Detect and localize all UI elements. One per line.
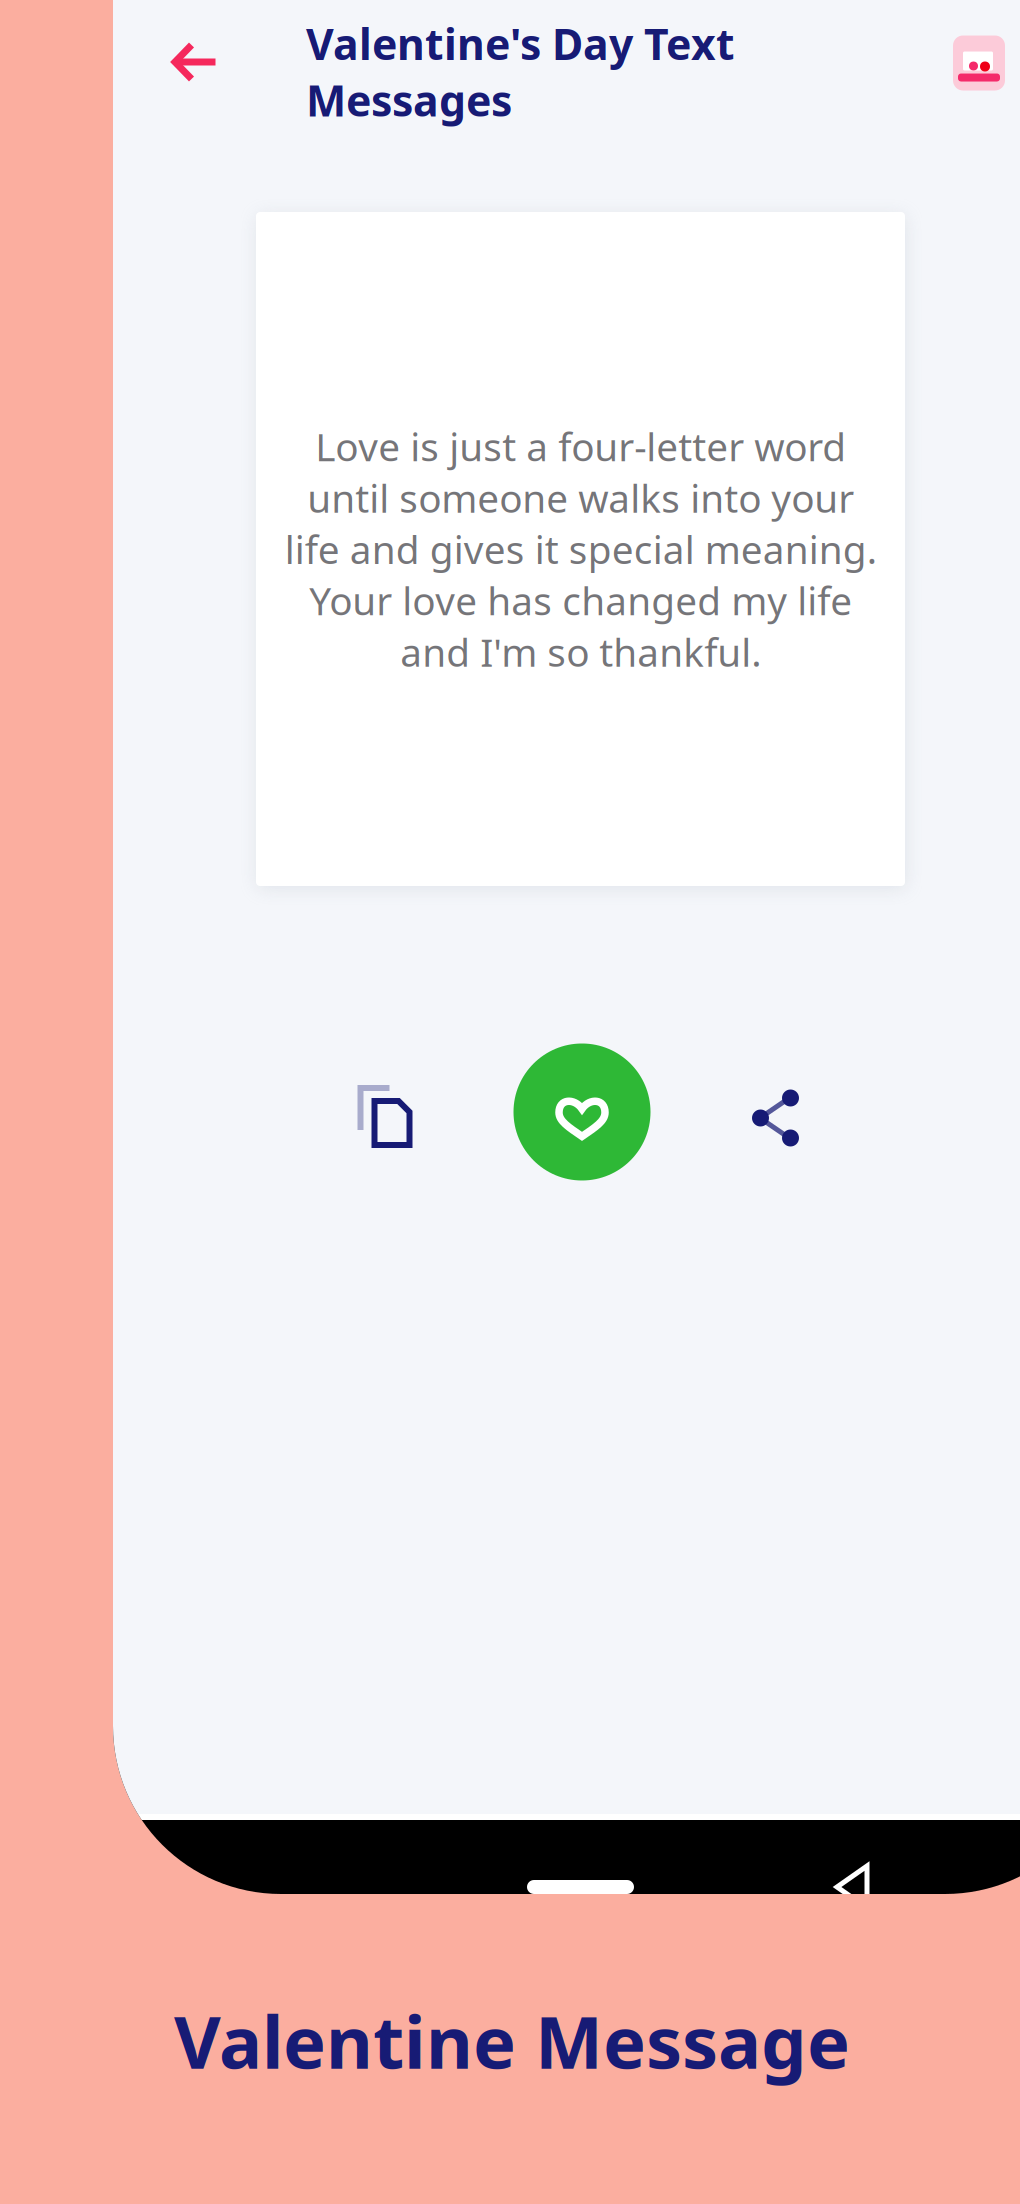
- staticText: Love is just a four-letter word until so…: [284, 421, 876, 677]
- button[interactable]: Back: [150, 17, 240, 107]
- staticText: Valentine's Day Text Messages: [306, 15, 735, 128]
- button[interactable]: Copy message: [327, 1058, 443, 1174]
- staticText: Valentine Message: [174, 1993, 850, 2089]
- button[interactable]: More: [937, 21, 1020, 105]
- button[interactable]: Share: [717, 1060, 833, 1176]
- button[interactable]: Send message: [502, 1032, 662, 1192]
